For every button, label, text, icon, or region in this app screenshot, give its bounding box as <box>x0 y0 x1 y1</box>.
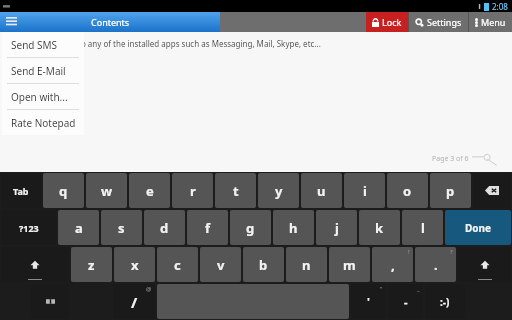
button[interactable]: q <box>43 173 84 208</box>
staticText: z <box>88 256 95 274</box>
button[interactable]: . <box>415 247 456 282</box>
button[interactable]: :-) <box>425 284 465 319</box>
staticText: c <box>174 256 181 274</box>
button[interactable]: k <box>359 210 400 245</box>
staticText: Menu <box>481 16 506 28</box>
staticText: h <box>289 219 298 237</box>
staticText: o <box>403 182 412 200</box>
staticText: l <box>421 219 425 237</box>
staticText: ? <box>450 248 453 256</box>
staticText: :-) <box>440 295 450 309</box>
button[interactable]: / <box>113 284 155 319</box>
button[interactable]: Send E-Mail <box>2 58 84 83</box>
staticText: x <box>131 256 139 274</box>
staticText: b <box>259 256 268 274</box>
staticText: _ <box>417 285 420 293</box>
staticText: 2:08 <box>492 1 508 12</box>
staticText: a <box>75 219 83 237</box>
button[interactable]: e <box>129 173 170 208</box>
staticText: y <box>275 182 283 200</box>
button[interactable]: r <box>172 173 213 208</box>
staticText: p <box>446 182 455 200</box>
button[interactable]: Tab <box>1 173 41 208</box>
button[interactable]: p <box>430 173 471 208</box>
staticText: t <box>233 182 239 200</box>
button[interactable]: Open with... <box>2 84 84 109</box>
button[interactable]: u <box>301 173 342 208</box>
staticText: / <box>131 292 138 312</box>
staticText: r <box>190 182 196 200</box>
button[interactable]: , <box>372 247 413 282</box>
staticText: j <box>335 219 339 237</box>
staticText: Page 3 of 6 <box>432 154 469 164</box>
button[interactable]: Shift <box>458 247 511 282</box>
button[interactable]: a <box>58 210 99 245</box>
staticText: s <box>118 219 125 237</box>
button[interactable]: c <box>157 247 198 282</box>
button[interactable]: b <box>243 247 284 282</box>
staticText: f <box>205 219 211 237</box>
button[interactable]: w <box>86 173 127 208</box>
button[interactable]: l <box>402 210 443 245</box>
button[interactable]: Menu <box>469 12 512 32</box>
button[interactable]: ' <box>351 284 386 319</box>
staticText: " <box>380 285 383 293</box>
staticText: w <box>101 182 113 200</box>
button[interactable]: Navigation drawer <box>0 12 22 32</box>
button[interactable]: i <box>344 173 385 208</box>
button[interactable]: Send SMS <box>2 32 84 57</box>
staticText: Done <box>465 221 492 235</box>
button[interactable]: - <box>388 284 423 319</box>
button[interactable]: y <box>258 173 299 208</box>
button[interactable]: Shift <box>1 247 69 282</box>
button[interactable]: o <box>387 173 428 208</box>
button[interactable]: j <box>316 210 357 245</box>
staticText: Contents <box>91 16 130 28</box>
staticText: ' <box>367 294 370 309</box>
staticText: Open with... <box>11 90 68 104</box>
staticText: m <box>343 256 356 274</box>
staticText: Send E-Mail <box>11 64 66 78</box>
button[interactable]: ?123 <box>1 210 56 245</box>
staticText: to any of the installed apps such as Mes… <box>78 38 321 49</box>
staticText: Send SMS <box>11 38 58 52</box>
button[interactable]: t <box>215 173 256 208</box>
button[interactable]: m <box>329 247 370 282</box>
button[interactable]: v <box>200 247 241 282</box>
staticText: u <box>317 182 326 200</box>
staticText: ! <box>408 248 410 256</box>
button[interactable]: d <box>144 210 185 245</box>
staticText: Tab <box>13 185 29 197</box>
button[interactable]: f <box>187 210 228 245</box>
staticText: - <box>404 294 408 309</box>
staticText: Settings <box>427 16 462 28</box>
button[interactable]: Lock <box>366 12 408 32</box>
staticText: Rate Notepad <box>11 116 76 130</box>
button[interactable]: z <box>71 247 112 282</box>
staticText: g <box>246 219 255 237</box>
staticText: d <box>160 219 169 237</box>
staticText: Lock <box>382 16 402 28</box>
staticText: ?123 <box>19 222 39 234</box>
staticText: @ <box>146 285 152 293</box>
button[interactable]: Backspace <box>473 173 511 208</box>
button[interactable]: h <box>273 210 314 245</box>
staticText: . <box>434 256 438 274</box>
button[interactable]: x <box>114 247 155 282</box>
button[interactable]: g <box>230 210 271 245</box>
staticText: v <box>217 256 225 274</box>
staticText: , <box>391 256 395 274</box>
staticText: i <box>363 182 367 200</box>
button[interactable]: Settings <box>409 12 468 32</box>
button[interactable]: n <box>286 247 327 282</box>
staticText: q <box>59 182 68 200</box>
button[interactable] <box>31 284 69 319</box>
button[interactable]: s <box>101 210 142 245</box>
button[interactable]: Done <box>445 210 511 245</box>
staticText: k <box>375 219 384 237</box>
button[interactable]: Rate Notepad <box>2 110 84 135</box>
staticText: e <box>146 182 154 200</box>
staticText: n <box>302 256 311 274</box>
